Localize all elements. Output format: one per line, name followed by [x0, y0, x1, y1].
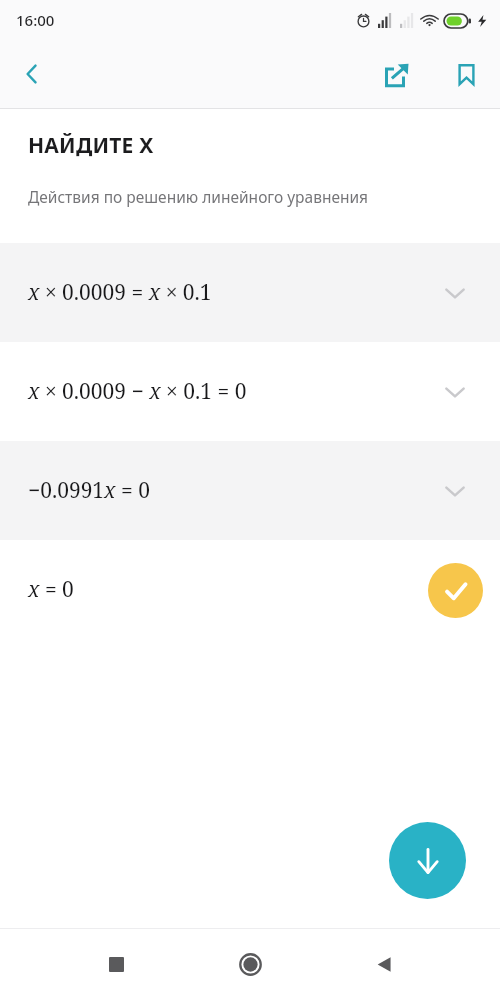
- staticText: 16:00: [16, 10, 55, 30]
- staticText: x × 0.0009 = x × 0.1: [28, 278, 212, 307]
- button[interactable]: Back: [8, 50, 56, 98]
- button[interactable]: Share: [370, 48, 422, 100]
- staticText: −0.0991x = 0: [28, 476, 150, 505]
- button[interactable]: Back: [334, 929, 434, 1000]
- button[interactable]: x × 0.0009 = x × 0.1: [0, 243, 500, 342]
- staticText: x = 0: [28, 575, 74, 604]
- button[interactable]: x × 0.0009 − x × 0.1 = 0: [0, 342, 500, 441]
- button[interactable]: Recents: [66, 929, 166, 1000]
- button[interactable]: Home: [200, 929, 300, 1000]
- button[interactable]: −0.0991x = 0: [0, 441, 500, 540]
- button[interactable]: Download: [389, 822, 466, 899]
- staticText: Действия по решению линейного уравнения: [28, 186, 369, 207]
- button[interactable]: Bookmark: [440, 48, 492, 100]
- staticText: НАЙДИТЕ X: [28, 131, 154, 160]
- button[interactable]: x = 0: [0, 540, 500, 639]
- staticText: x × 0.0009 − x × 0.1 = 0: [28, 377, 247, 406]
